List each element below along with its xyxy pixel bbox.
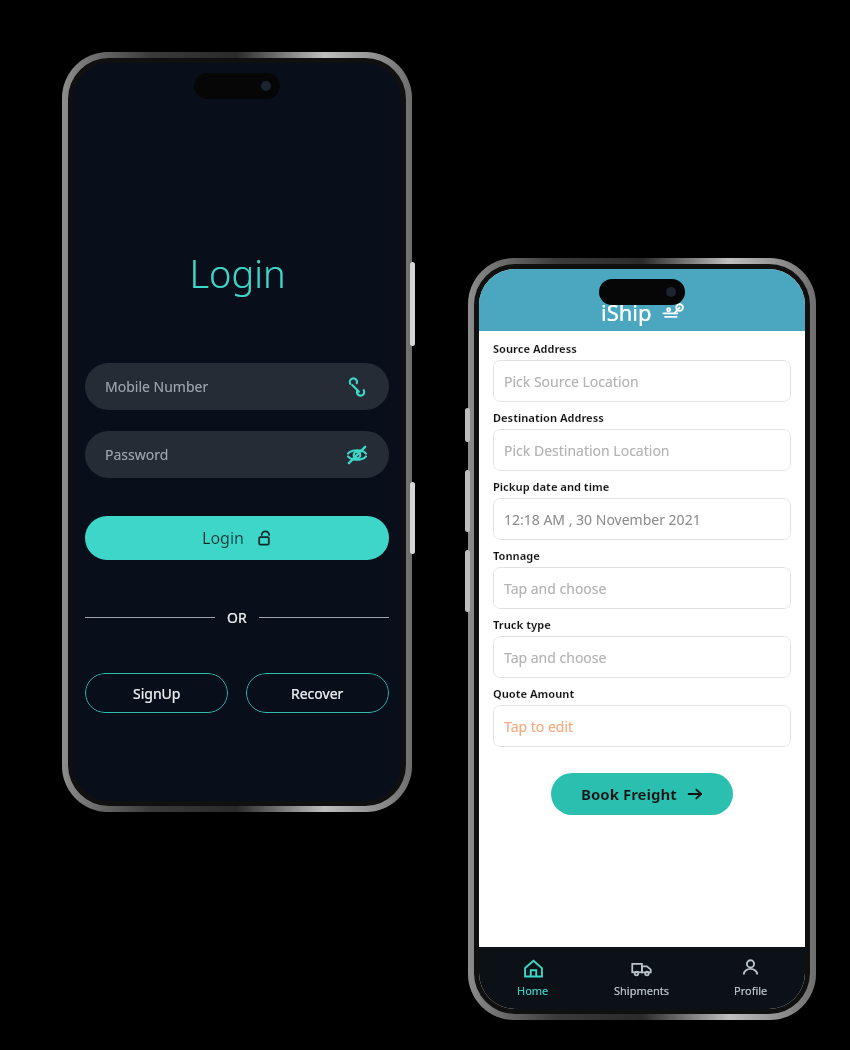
staticText: Tap and choose <box>504 579 607 598</box>
button[interactable]: Pick Source Location <box>493 360 791 402</box>
button[interactable]: Shipments <box>587 947 696 1009</box>
button[interactable]: Tap and choose <box>493 567 791 609</box>
staticText: SignUp <box>133 684 181 703</box>
button[interactable]: SignUp <box>85 673 228 713</box>
staticText: Tonnage <box>493 548 540 563</box>
button[interactable]: Mobile Number <box>85 363 389 410</box>
button[interactable]: Profile <box>696 947 805 1009</box>
button[interactable]: Tap and choose <box>493 636 791 678</box>
staticText: Pick Source Location <box>504 372 639 391</box>
staticText: Home <box>517 983 549 998</box>
staticText: Shipments <box>614 983 669 998</box>
staticText: Profile <box>734 983 768 998</box>
button[interactable]: Tap to edit <box>493 705 791 747</box>
staticText: Password <box>105 445 345 464</box>
button[interactable]: Recover <box>246 673 389 713</box>
staticText: Recover <box>291 684 344 703</box>
button[interactable]: Home <box>479 947 587 1009</box>
button[interactable]: 12:18 AM , 30 November 2021 <box>493 498 791 540</box>
staticText: Mobile Number <box>105 377 345 396</box>
staticText: Quote Amount <box>493 686 575 701</box>
staticText: Book Freight <box>581 784 677 804</box>
staticText: OR <box>227 608 247 627</box>
button[interactable]: Book Freight <box>551 773 733 815</box>
button[interactable]: Password <box>85 431 389 478</box>
button[interactable]: Pick Destination Location <box>493 429 791 471</box>
staticText: Pickup date and time <box>493 479 610 494</box>
staticText: Login <box>202 527 244 549</box>
staticText: Destination Address <box>493 410 604 425</box>
other: Phone <box>345 375 369 399</box>
staticText: Truck type <box>493 617 551 632</box>
staticText: iShip <box>601 297 652 327</box>
staticText: Login <box>189 247 286 299</box>
button[interactable]: Login <box>85 516 389 560</box>
staticText: 12:18 AM , 30 November 2021 <box>504 510 701 529</box>
staticText: Tap to edit <box>504 717 574 736</box>
staticText: Pick Destination Location <box>504 441 670 460</box>
other: Show password <box>345 443 369 467</box>
staticText: Source Address <box>493 341 577 356</box>
staticText: Tap and choose <box>504 648 607 667</box>
